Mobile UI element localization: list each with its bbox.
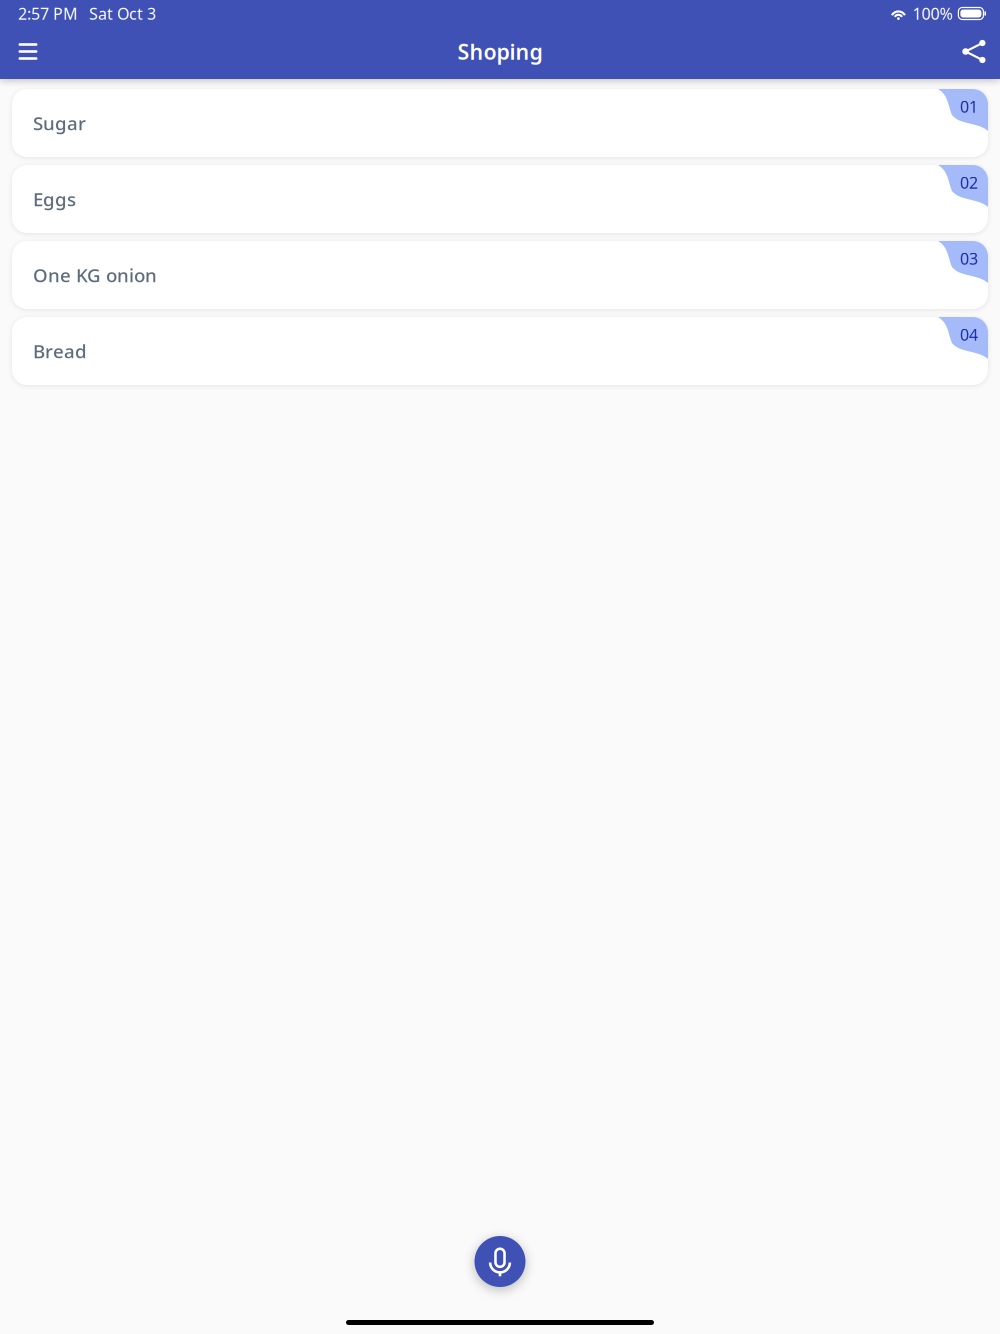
staticText: Sugar <box>33 111 86 135</box>
staticText: 02 <box>960 172 978 193</box>
staticText: 100% <box>912 3 952 24</box>
staticText: Eggs <box>33 187 76 211</box>
staticText: Sat Oct 3 <box>89 3 156 24</box>
button[interactable]: Menu <box>6 27 50 75</box>
button[interactable]: 03 <box>12 241 988 309</box>
staticText: Shoping <box>457 37 542 66</box>
button[interactable]: Voice input <box>474 1236 525 1287</box>
staticText: 2:57 PM <box>18 3 78 24</box>
staticText: 03 <box>960 248 978 269</box>
button[interactable]: 01 <box>12 89 988 157</box>
staticText: Bread <box>33 339 87 363</box>
button[interactable]: 02 <box>12 165 988 233</box>
button[interactable]: 04 <box>12 317 988 385</box>
staticText: One KG onion <box>33 263 157 287</box>
staticText: 04 <box>960 324 978 345</box>
button[interactable]: Share <box>952 27 996 75</box>
staticText: 01 <box>960 96 978 117</box>
